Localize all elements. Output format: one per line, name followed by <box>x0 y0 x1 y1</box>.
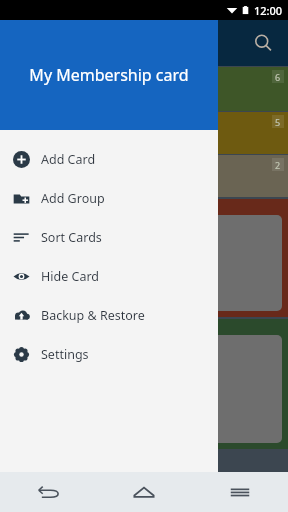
staticText: Sort Cards <box>41 229 102 246</box>
staticText: 2 <box>275 159 281 171</box>
button[interactable]: Backup & Restore <box>0 296 218 335</box>
staticText: My Membership card <box>29 64 189 86</box>
button[interactable]: 5 <box>0 112 288 154</box>
button[interactable]: Back <box>0 472 96 512</box>
button[interactable]: Add Group <box>0 179 218 218</box>
staticText: Settings <box>41 346 89 363</box>
button[interactable]: My Membership card <box>0 20 218 130</box>
button[interactable]: Search <box>245 25 281 61</box>
button[interactable]: Hide Card <box>0 257 218 296</box>
staticText: Add Card <box>41 151 96 168</box>
button[interactable]: 6 <box>0 67 288 111</box>
staticText: 5 <box>275 116 281 128</box>
button[interactable]: Sort Cards <box>0 218 218 257</box>
button[interactable] <box>0 319 288 449</box>
button[interactable]: Add Card <box>0 140 218 179</box>
staticText: Hide Card <box>41 268 99 285</box>
button[interactable]: 2 <box>0 155 288 197</box>
staticText: Add Group <box>41 190 105 207</box>
button[interactable]: Home <box>96 472 192 512</box>
button[interactable]: Recents <box>192 472 288 512</box>
staticText: Backup & Restore <box>41 307 145 324</box>
button[interactable]: Settings <box>0 335 218 374</box>
staticText: 6 <box>275 71 281 83</box>
button[interactable] <box>0 199 288 317</box>
staticText: 12:00 <box>254 3 283 18</box>
